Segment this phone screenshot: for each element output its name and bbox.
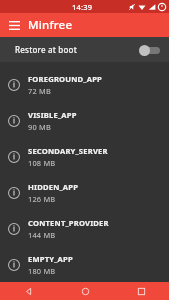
button[interactable]: App info [0,67,169,103]
staticText: 144 MB [28,230,56,240]
button[interactable]: App info [0,175,169,211]
button[interactable]: Back [0,282,57,300]
button[interactable]: App info [0,103,169,139]
button[interactable]: App info [7,186,21,200]
staticText: Minfree [28,17,73,33]
staticText: 180 MB [28,266,56,276]
button[interactable]: App info [0,211,169,247]
button[interactable]: App info [0,139,169,175]
button[interactable]: App info [7,222,21,236]
button[interactable]: App info [7,114,21,128]
button[interactable]: Restore at boot [0,37,169,62]
staticText: VISIBLE_APP [28,110,77,120]
staticText: 126 MB [28,194,56,204]
staticText: FOREGROUND_APP [28,74,102,84]
button[interactable]: App info [7,150,21,164]
staticText: 108 MB [28,158,56,168]
staticText: HIDDEN_APP [28,182,79,192]
staticText: CONTENT_PROVIDER [28,218,109,228]
staticText: EMPTY_APP [28,254,73,264]
button[interactable]: Recent apps [113,282,169,300]
staticText: 90 MB [28,122,51,132]
button[interactable]: App info [0,247,169,282]
button[interactable]: App info [7,258,21,272]
button[interactable]: Open navigation drawer [5,16,23,34]
staticText: 14:39 [72,2,93,12]
staticText: 72 MB [28,86,51,96]
staticText: Restore at boot [15,44,77,55]
staticText: SECONDARY_SERVER [28,146,108,156]
button[interactable]: App info [7,78,21,92]
button[interactable]: Home [57,282,113,300]
